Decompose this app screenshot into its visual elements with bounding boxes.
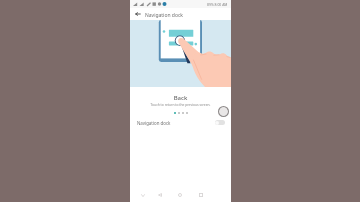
button[interactable]: Assistant bbox=[218, 106, 229, 117]
button[interactable]: Navigation dock toggle bbox=[215, 120, 225, 125]
button[interactable]: Hide bbox=[138, 190, 148, 200]
button[interactable]: Back bbox=[155, 190, 165, 200]
staticText: Touch to return to the previous screen. bbox=[130, 102, 231, 106]
staticText: Navigation dock bbox=[145, 12, 183, 19]
button[interactable]: Back bbox=[133, 9, 143, 19]
button[interactable]: Recent apps bbox=[196, 190, 206, 200]
staticText: Back bbox=[130, 94, 231, 102]
staticText: 89% 8:00 AM bbox=[207, 2, 228, 7]
button[interactable]: Home bbox=[175, 190, 185, 200]
staticText: Navigation dock bbox=[137, 120, 171, 126]
button[interactable]: Navigation dock bbox=[130, 117, 231, 128]
